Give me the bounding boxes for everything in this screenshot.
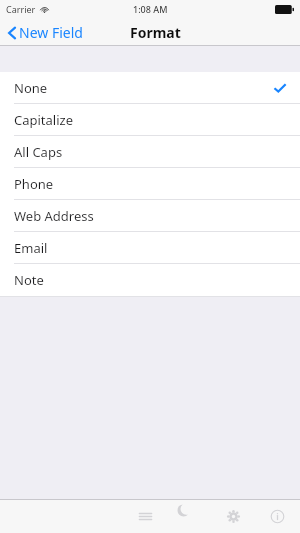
button[interactable]: New Field [6,20,85,45]
button[interactable]: None [0,72,300,104]
staticText: New Field [19,23,83,42]
staticText: Capitalize [14,111,73,129]
staticText: Web Address [14,207,94,225]
staticText: Note [14,271,44,289]
button[interactable]: Phone [0,168,300,200]
button[interactable]: Email [0,232,300,264]
staticText: Phone [14,175,54,193]
button[interactable]: Web Address [0,200,300,232]
staticText: All Caps [14,143,63,161]
button[interactable]: Info [264,503,290,529]
staticText: Email [14,239,48,257]
button[interactable]: Night mode [176,503,202,529]
button[interactable]: Settings [220,503,246,529]
staticText: Format [130,23,181,42]
button[interactable]: Menu [132,503,158,529]
button[interactable]: Capitalize [0,104,300,136]
button[interactable]: All Caps [0,136,300,168]
button[interactable]: Note [0,264,300,296]
staticText: Carrier [6,3,36,15]
staticText: None [14,79,48,97]
staticText: 1:08 AM [133,3,168,15]
